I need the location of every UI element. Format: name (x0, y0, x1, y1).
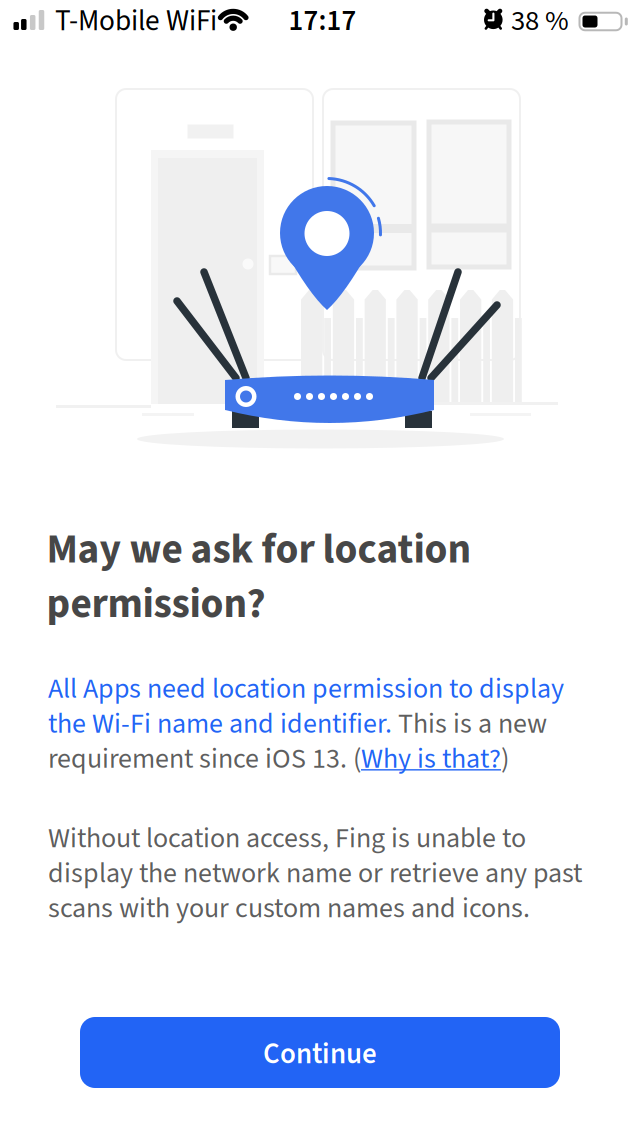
staticText: permission? (46, 575, 265, 633)
button[interactable]: Continue (80, 1017, 560, 1088)
staticText: the Wi-Fi name and identifier. (48, 704, 392, 744)
staticText: Continue (263, 1034, 377, 1075)
staticText: This is a new (392, 704, 547, 744)
staticText: May we ask for location (46, 520, 471, 579)
staticText: T-Mobile WiFi (55, 0, 217, 42)
staticText: Without location access, Fing is unable … (48, 819, 526, 858)
staticText: ) (501, 739, 509, 779)
staticText: All Apps need location permission to dis… (48, 669, 564, 709)
staticText: 38 % (511, 1, 569, 41)
staticText: requirement since iOS 13. ( (48, 739, 361, 779)
button[interactable]: Why is that? (361, 739, 501, 779)
staticText: Why is that? (361, 739, 501, 779)
staticText: display the network name or retrieve any… (48, 854, 582, 893)
staticText: scans with your custom names and icons. (48, 889, 530, 928)
staticText: 17:17 (288, 1, 356, 41)
